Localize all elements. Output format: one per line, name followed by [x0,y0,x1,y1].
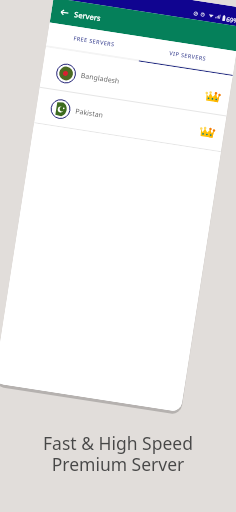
button[interactable]: Bangladesh [40,52,232,116]
staticText: Fast & High Speed Premium Server [0,431,236,476]
staticText: Pakistan [75,106,104,121]
button[interactable]: VIP SERVERS [139,37,236,74]
staticText: 69% [226,14,236,24]
staticText: Bangladesh [80,71,120,87]
button[interactable]: Pakistan [34,88,226,151]
button[interactable]: Back [57,6,71,19]
button[interactable]: FREE SERVERS [46,22,143,59]
staticText: FREE SERVERS [73,34,116,49]
staticText: VIP SERVERS [169,49,208,63]
staticText: Servers [73,9,102,23]
